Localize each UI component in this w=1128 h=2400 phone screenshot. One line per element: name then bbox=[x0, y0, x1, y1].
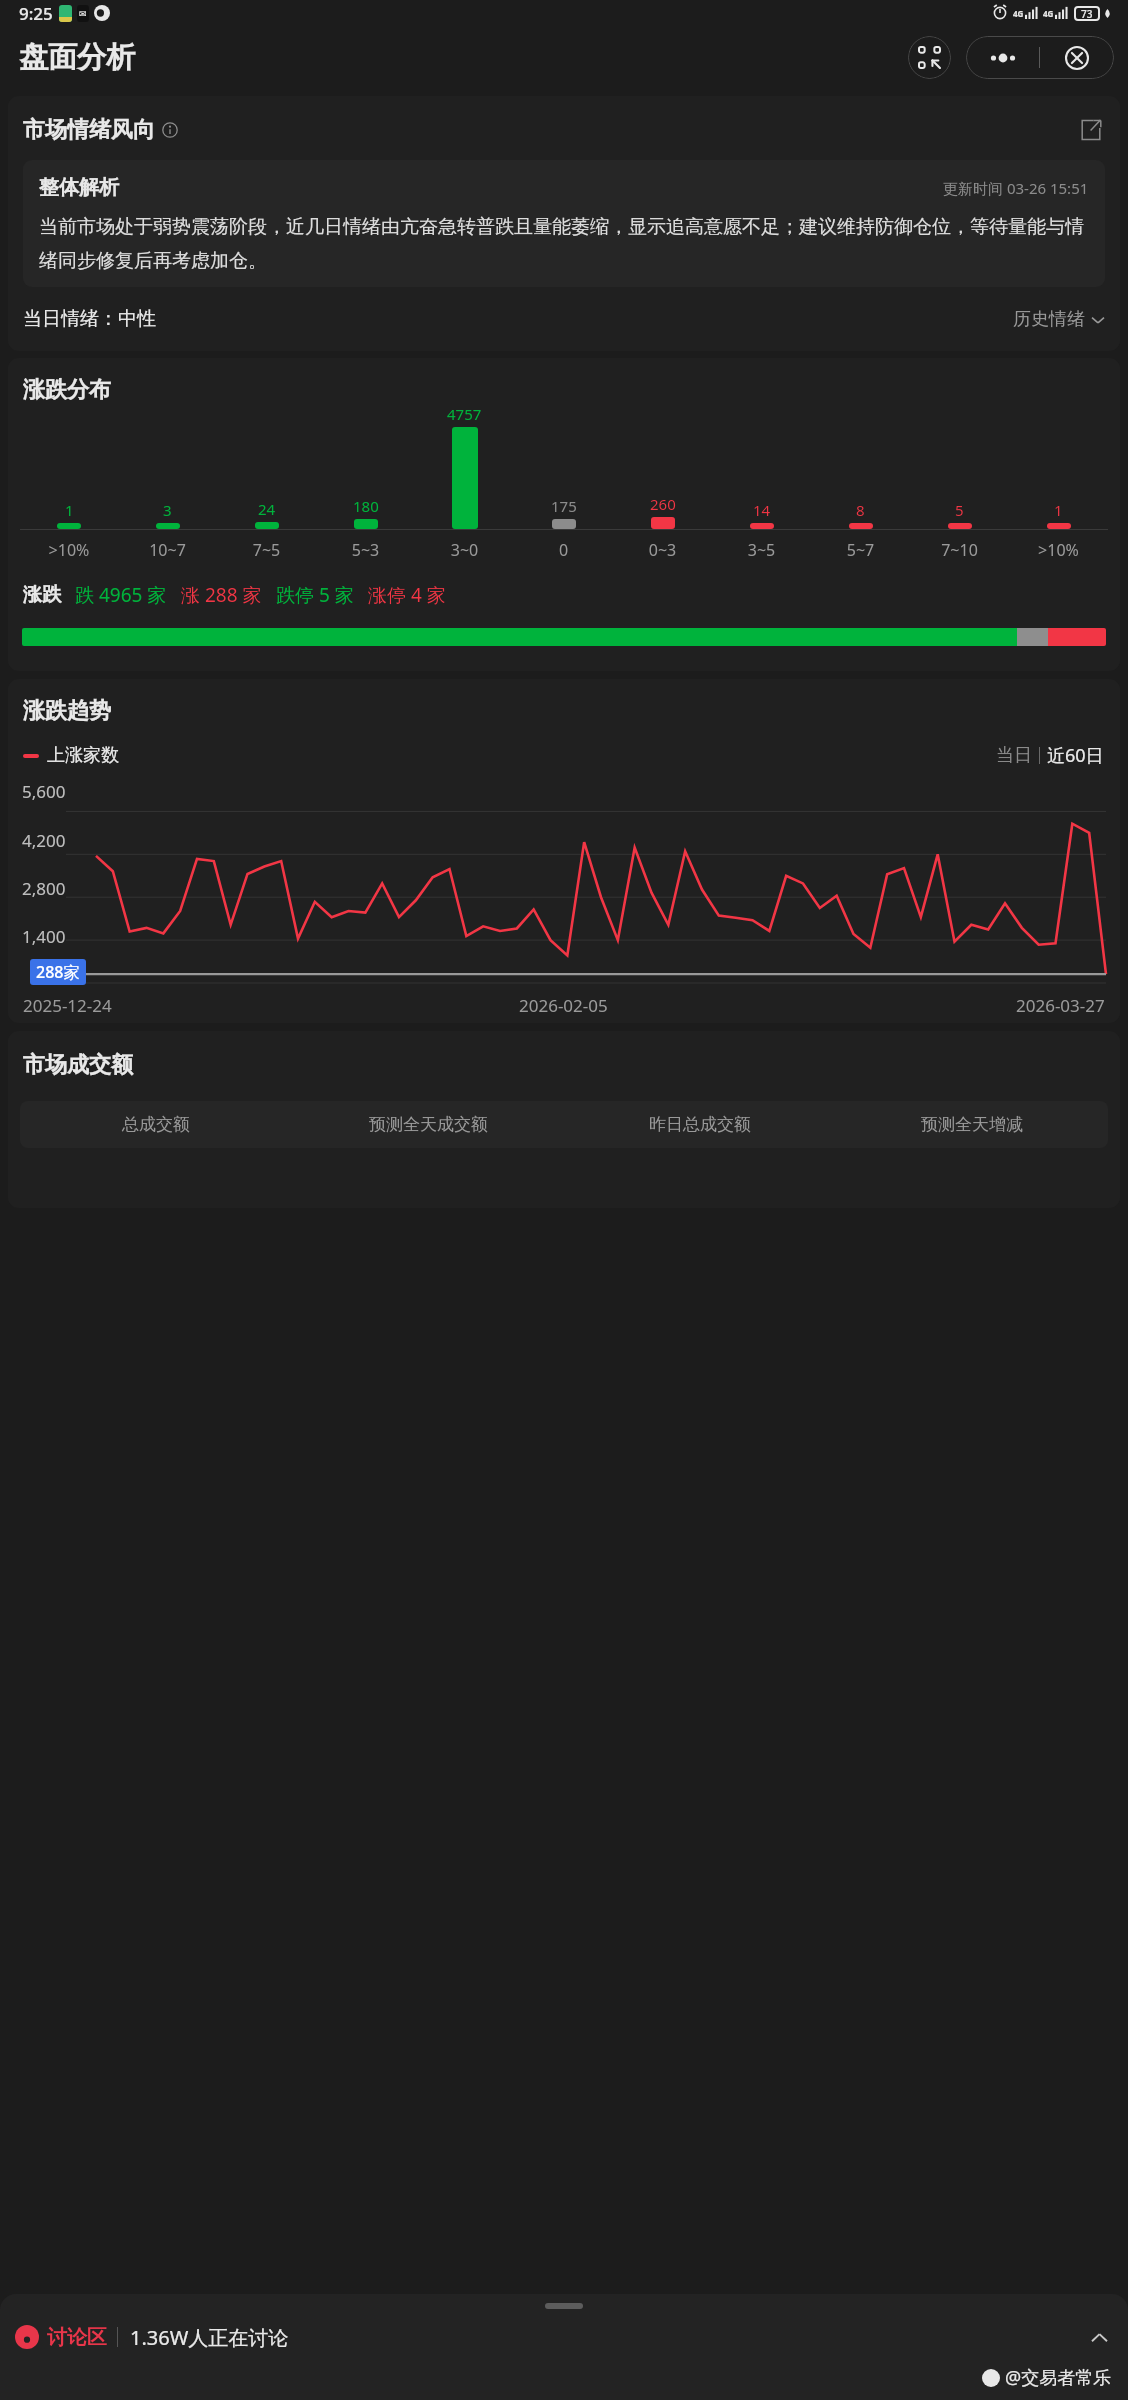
staticText: 涨停 4 家 bbox=[368, 582, 446, 608]
button[interactable]: Expand bbox=[1085, 2323, 1113, 2351]
staticText: 盘面分析 bbox=[19, 39, 135, 76]
staticText: 1 bbox=[65, 500, 74, 520]
button[interactable]: 历史情绪 bbox=[1013, 308, 1105, 331]
staticText: 跌 4965 家 bbox=[75, 582, 167, 608]
staticText: 上涨家数 bbox=[47, 744, 119, 767]
button[interactable]: 预测全天增减 bbox=[836, 1114, 1108, 1135]
staticText: 2026-03-27 bbox=[1016, 994, 1105, 1017]
button[interactable]: Close bbox=[1040, 36, 1114, 79]
staticText: 260 bbox=[650, 494, 676, 514]
staticText: 5,600 bbox=[22, 780, 66, 803]
button[interactable]: Scan bbox=[908, 36, 951, 79]
staticText: 历史情绪 bbox=[1013, 308, 1085, 331]
staticText: 7~5 bbox=[217, 539, 316, 561]
staticText: 2025-12-24 bbox=[23, 994, 112, 1017]
staticText: 整体解析 bbox=[39, 175, 119, 200]
staticText: 昨日总成交额 bbox=[649, 1114, 751, 1135]
button[interactable]: 昨日总成交额 bbox=[564, 1114, 836, 1135]
staticText: 涨 288 家 bbox=[181, 582, 262, 608]
staticText: 预测全天成交额 bbox=[369, 1114, 488, 1135]
staticText: 涨跌趋势 bbox=[23, 697, 111, 725]
staticText: @交易者常乐 bbox=[1005, 2365, 1112, 2390]
staticText: 7~10 bbox=[910, 539, 1009, 561]
staticText: 5~3 bbox=[316, 539, 415, 561]
staticText: 涨跌 bbox=[23, 583, 61, 607]
staticText: 175 bbox=[551, 496, 577, 516]
staticText: 0 bbox=[514, 539, 613, 561]
staticText: 当日情绪：中性 bbox=[23, 307, 156, 331]
staticText: 更新时间 03-26 15:51 bbox=[943, 178, 1089, 198]
staticText: 1.36W人正在讨论 bbox=[130, 2324, 289, 2351]
staticText: 3~5 bbox=[712, 539, 811, 561]
staticText: 讨论区 bbox=[47, 2325, 107, 2350]
staticText: 5 bbox=[955, 500, 964, 520]
staticText: 2026-02-05 bbox=[519, 994, 608, 1017]
staticText: 4G bbox=[1013, 8, 1024, 19]
button[interactable]: 当日 bbox=[996, 744, 1032, 767]
button[interactable]: More bbox=[966, 36, 1039, 79]
staticText: >10% bbox=[20, 539, 118, 561]
staticText: 14 bbox=[753, 500, 771, 520]
staticText: 4G bbox=[1043, 8, 1054, 19]
staticText: 涨跌分布 bbox=[23, 376, 111, 404]
staticText: 8 bbox=[856, 500, 865, 520]
staticText: 9:25 bbox=[19, 2, 53, 25]
staticText: 2,800 bbox=[22, 877, 66, 900]
button[interactable]: 近60日 bbox=[1047, 743, 1104, 768]
staticText: 288家 bbox=[36, 961, 80, 983]
staticText: 总成交额 bbox=[122, 1114, 190, 1135]
staticText: 3~0 bbox=[415, 539, 514, 561]
staticText: >10% bbox=[1009, 539, 1108, 561]
staticText: 预测全天增减 bbox=[921, 1114, 1023, 1135]
staticText: 73 bbox=[1081, 7, 1093, 21]
staticText: ✉ bbox=[79, 9, 87, 19]
staticText: 1 bbox=[1054, 500, 1063, 520]
button[interactable]: Open bbox=[1078, 117, 1104, 143]
button[interactable]: 讨论区 bbox=[15, 2309, 1113, 2365]
staticText: 1,400 bbox=[22, 925, 66, 948]
staticText: 市场情绪风向 bbox=[23, 116, 155, 144]
staticText: 5~7 bbox=[811, 539, 910, 561]
staticText: 4,200 bbox=[22, 829, 66, 852]
button[interactable]: 市场情绪风向 bbox=[23, 116, 1104, 144]
button[interactable]: 总成交额 bbox=[20, 1114, 292, 1135]
staticText: 跌停 5 家 bbox=[276, 582, 354, 608]
staticText: 10~7 bbox=[118, 539, 217, 561]
staticText: 4757 bbox=[447, 404, 482, 424]
staticText: 24 bbox=[258, 499, 276, 519]
button[interactable]: 预测全天成交额 bbox=[292, 1114, 564, 1135]
staticText: 市场成交额 bbox=[23, 1051, 133, 1079]
staticText: 180 bbox=[353, 496, 379, 516]
staticText: 3 bbox=[163, 500, 172, 520]
staticText: 当前市场处于弱势震荡阶段，近几日情绪由亢奋急转普跌且量能萎缩，显示追高意愿不足；… bbox=[39, 215, 1089, 272]
staticText: 0~3 bbox=[613, 539, 712, 561]
